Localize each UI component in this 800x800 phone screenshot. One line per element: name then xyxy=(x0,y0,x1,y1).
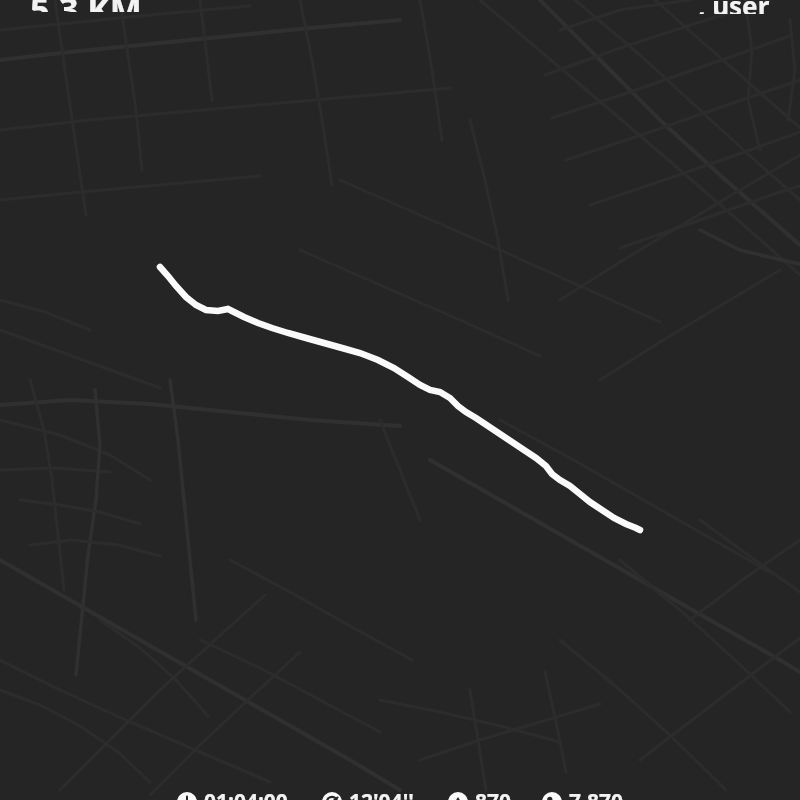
staticText: 12'04'' xyxy=(349,787,414,800)
button[interactable]: , user xyxy=(698,0,770,14)
button[interactable]: 870 xyxy=(448,787,512,800)
staticText: 7,870 xyxy=(569,787,624,800)
staticText: 01:04:00 xyxy=(204,787,288,800)
button[interactable]: 12'04'' xyxy=(322,787,414,800)
button[interactable]: 5.3 KM xyxy=(30,0,142,12)
staticText: 5.3 KM xyxy=(30,0,142,12)
button[interactable]: 7,870 xyxy=(542,787,624,800)
staticText: , user xyxy=(698,0,770,14)
button[interactable]: 01:04:00 xyxy=(177,787,288,800)
staticText: 870 xyxy=(475,787,512,800)
